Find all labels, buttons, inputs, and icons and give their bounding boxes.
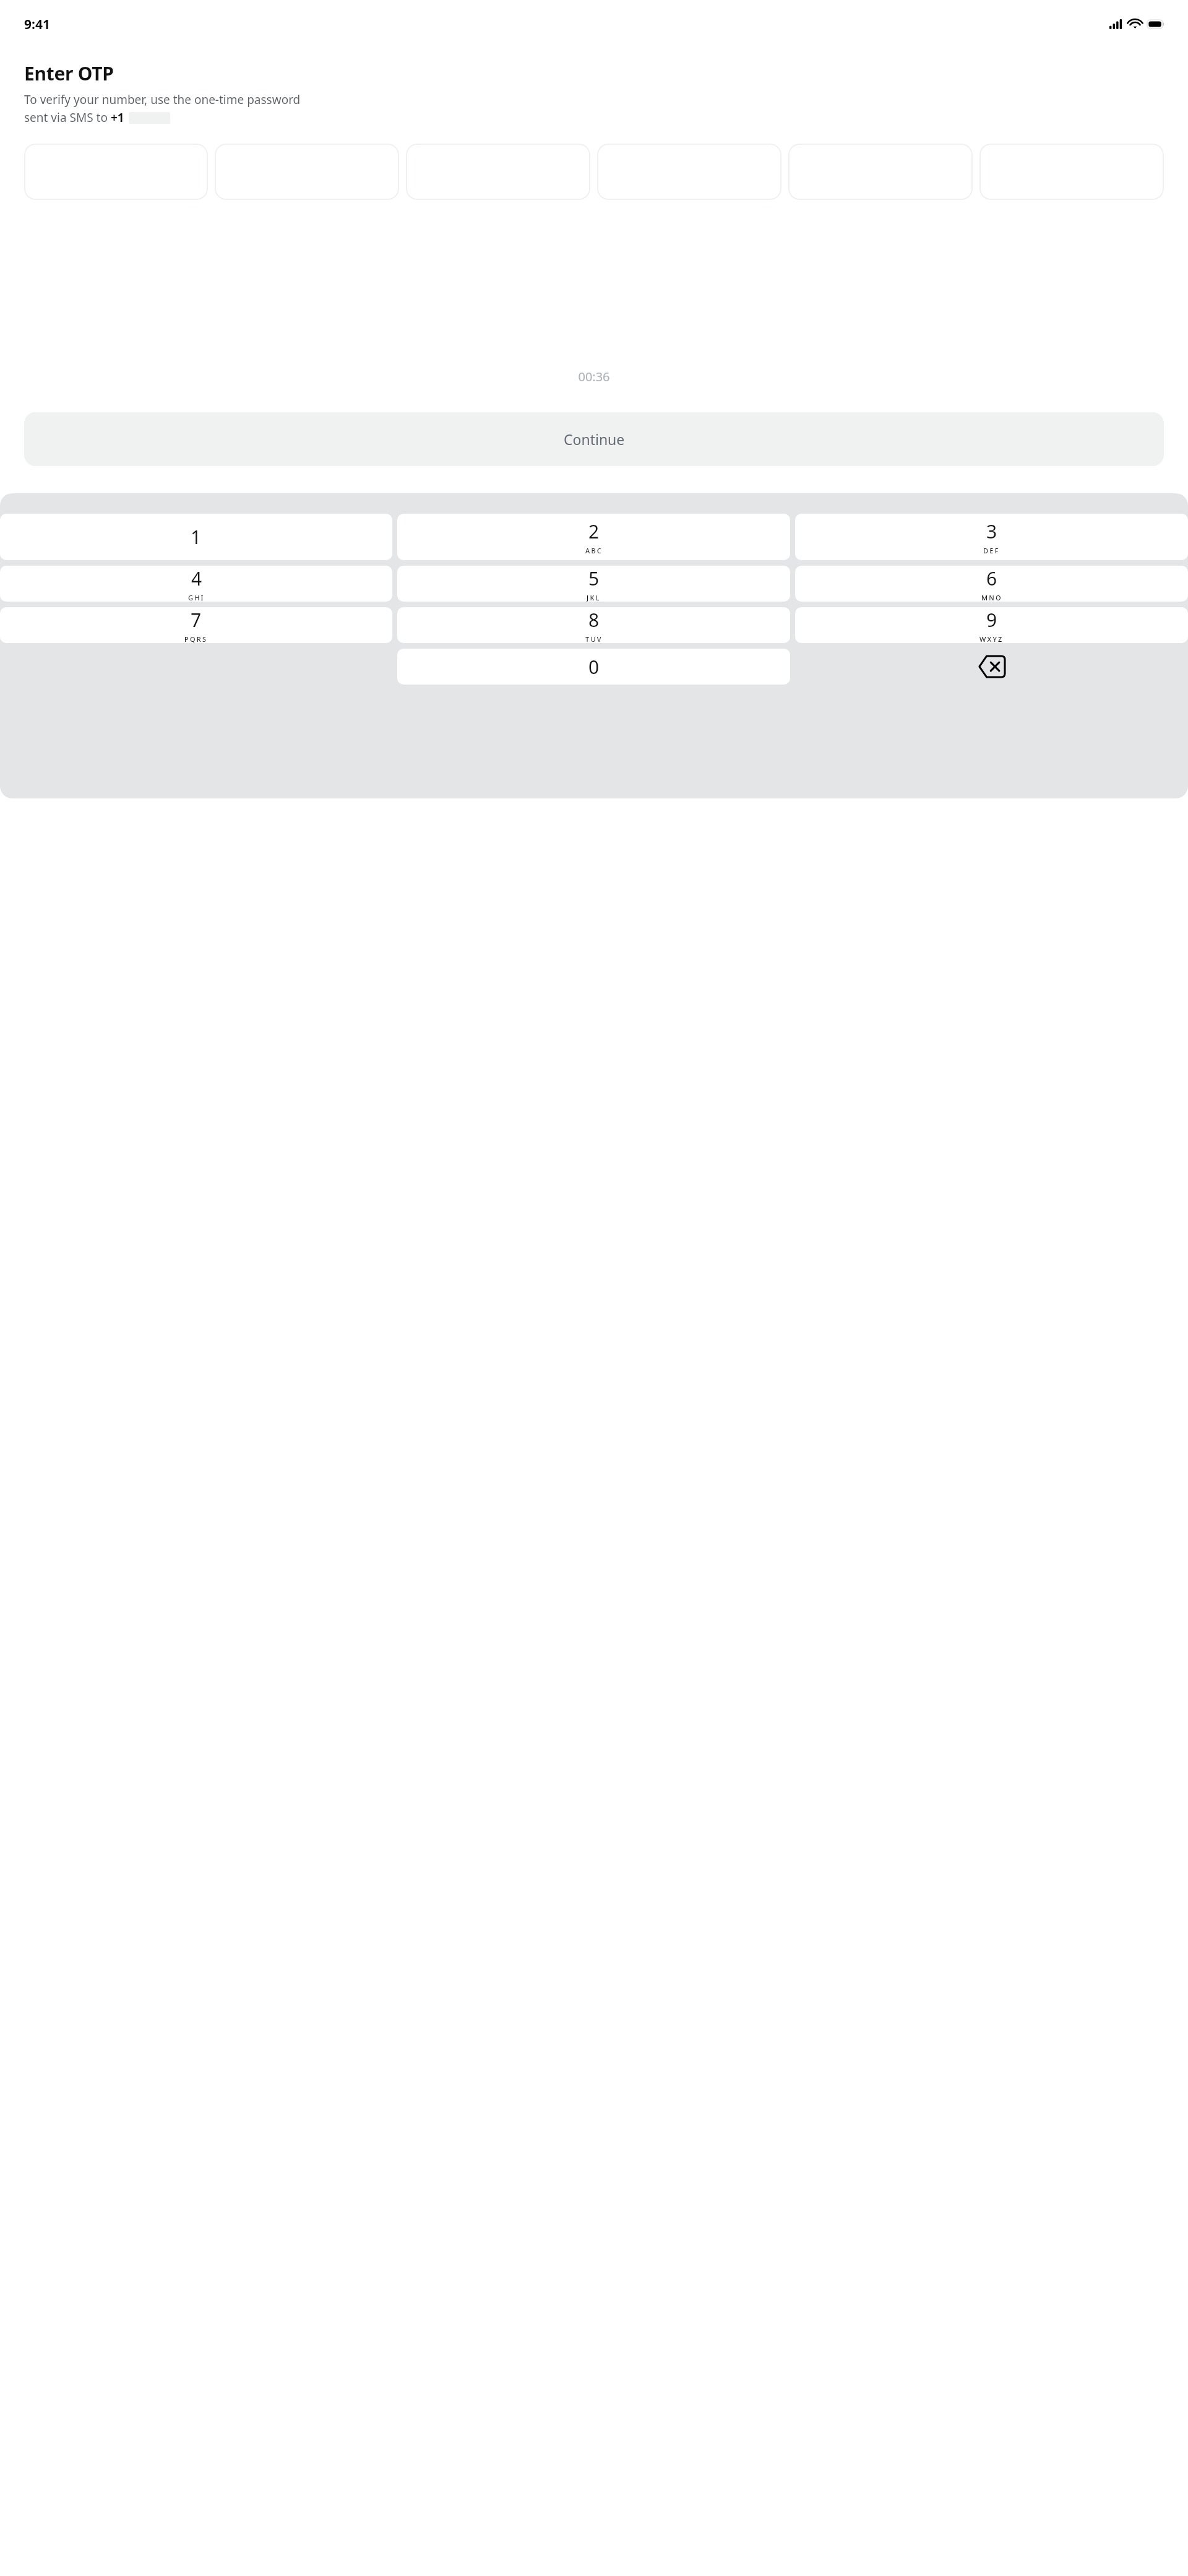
staticText: Continue — [564, 430, 625, 449]
staticText: 9 — [986, 607, 997, 633]
button[interactable]: 6 — [795, 566, 1188, 602]
staticText: 2 — [588, 519, 600, 544]
button[interactable]: 3 — [795, 514, 1188, 560]
button[interactable] — [406, 144, 590, 200]
button[interactable] — [597, 144, 781, 200]
button[interactable]: 4 — [0, 566, 392, 602]
button[interactable] — [24, 144, 208, 200]
staticText: 4 — [191, 566, 202, 591]
button[interactable]: Continue — [24, 412, 1164, 466]
staticText: 0 — [588, 654, 600, 680]
staticText: 00:36 — [0, 368, 1188, 385]
staticText: PQRS — [184, 634, 208, 643]
button[interactable]: Backspace — [795, 649, 1188, 685]
staticText: +1 — [111, 110, 124, 126]
staticText: 1 — [191, 524, 202, 550]
staticText: 3 — [986, 519, 997, 544]
staticText: ABC — [585, 546, 603, 555]
staticText: 9:41 — [24, 15, 50, 33]
button[interactable]: 2 — [397, 514, 790, 560]
staticText: MNO — [981, 593, 1002, 602]
staticText: To verify your number, use the one-time … — [24, 92, 301, 108]
button[interactable]: 0 — [397, 649, 790, 685]
staticText: Enter OTP — [24, 61, 114, 86]
button[interactable] — [215, 144, 399, 200]
button[interactable] — [979, 144, 1164, 200]
staticText: 6 — [986, 566, 997, 591]
staticText: 5 — [588, 566, 600, 591]
staticText: TUV — [585, 634, 603, 643]
staticText: 8 — [588, 607, 600, 633]
button[interactable]: 8 — [397, 607, 790, 643]
button[interactable]: 7 — [0, 607, 392, 643]
staticText: 7 — [191, 607, 202, 633]
button[interactable]: 5 — [397, 566, 790, 602]
staticText: WXYZ — [979, 634, 1004, 643]
staticText: DEF — [983, 546, 1000, 555]
staticText: GHI — [188, 593, 205, 602]
staticText: sent via SMS to — [24, 110, 111, 126]
staticText: JKL — [587, 593, 601, 602]
button[interactable]: 9 — [795, 607, 1188, 643]
button[interactable] — [788, 144, 973, 200]
button[interactable]: 1 — [0, 514, 392, 560]
